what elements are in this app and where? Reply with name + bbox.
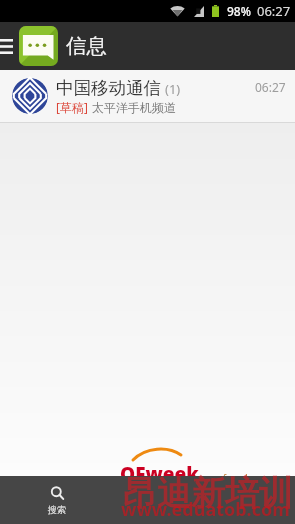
staticText: 06:27 — [255, 79, 286, 95]
staticText: 太平洋手机频道 — [92, 100, 176, 115]
button[interactable]: 中国移动通信 — [0, 70, 295, 123]
staticText: 信息 — [66, 33, 107, 59]
staticText: cn.ofweek.com — [203, 471, 274, 485]
button[interactable]: 搜索 — [0, 476, 114, 524]
staticText: 中国移动通信 — [56, 77, 161, 99]
staticText: 搜索 — [48, 504, 66, 515]
staticText: www.eduatob.com — [121, 497, 290, 522]
staticText: [草稿] — [56, 99, 88, 115]
staticText: 昂迪新培训 — [123, 472, 293, 515]
staticText: (1) — [165, 80, 181, 98]
staticText: OFweek — [120, 461, 199, 487]
staticText: 98% — [227, 3, 251, 19]
button[interactable]: Menu — [0, 22, 17, 70]
staticText: 06:27 — [257, 2, 291, 20]
